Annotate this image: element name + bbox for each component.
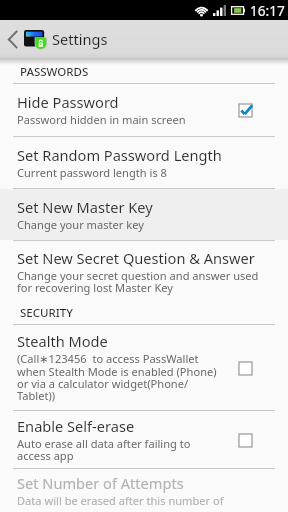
button[interactable]: Set New Secret Question & Answer: [0, 241, 288, 302]
staticText: Enable Self-erase: [17, 418, 135, 436]
button[interactable]: Set New Master Key: [0, 189, 288, 240]
button[interactable]: Set Random Password Length: [0, 137, 288, 188]
staticText: Password hidden in main screen: [17, 114, 186, 126]
staticText: Set New Master Key: [17, 199, 153, 217]
button[interactable]: Stealth Mode: [0, 325, 288, 410]
staticText: PASSWORDS: [20, 67, 89, 79]
button[interactable]: Toggle setting: [232, 95, 258, 125]
staticText: Current password length is 8: [17, 167, 167, 179]
staticText: Set New Secret Question & Answer: [17, 250, 255, 268]
button[interactable]: Toggle setting: [232, 425, 258, 455]
staticText: Hide Password: [17, 94, 119, 112]
button[interactable]: Enable Self-erase: [0, 411, 288, 468]
staticText: Auto erase all data after failing to acc…: [17, 438, 223, 462]
staticText: SECURITY: [20, 308, 74, 320]
staticText: Data will be erased after this number of: [17, 495, 224, 507]
staticText: Set Random Password Length: [17, 147, 222, 165]
staticText: 16:17: [250, 1, 285, 20]
staticText: Set Number of Attempts: [17, 475, 184, 493]
button[interactable]: Set Number of Attempts: [0, 469, 288, 512]
staticText: (Call∗123456 to access PassWallet when S…: [17, 353, 223, 402]
staticText: Change your master key: [17, 219, 144, 231]
button[interactable]: Hide Password: [0, 84, 288, 136]
staticText: Settings: [52, 29, 108, 49]
button[interactable]: Toggle setting: [232, 353, 258, 383]
button[interactable]: Navigate up: [3, 20, 21, 58]
staticText: Stealth Mode: [17, 333, 108, 351]
staticText: Change your secret question and answer u…: [17, 270, 275, 294]
